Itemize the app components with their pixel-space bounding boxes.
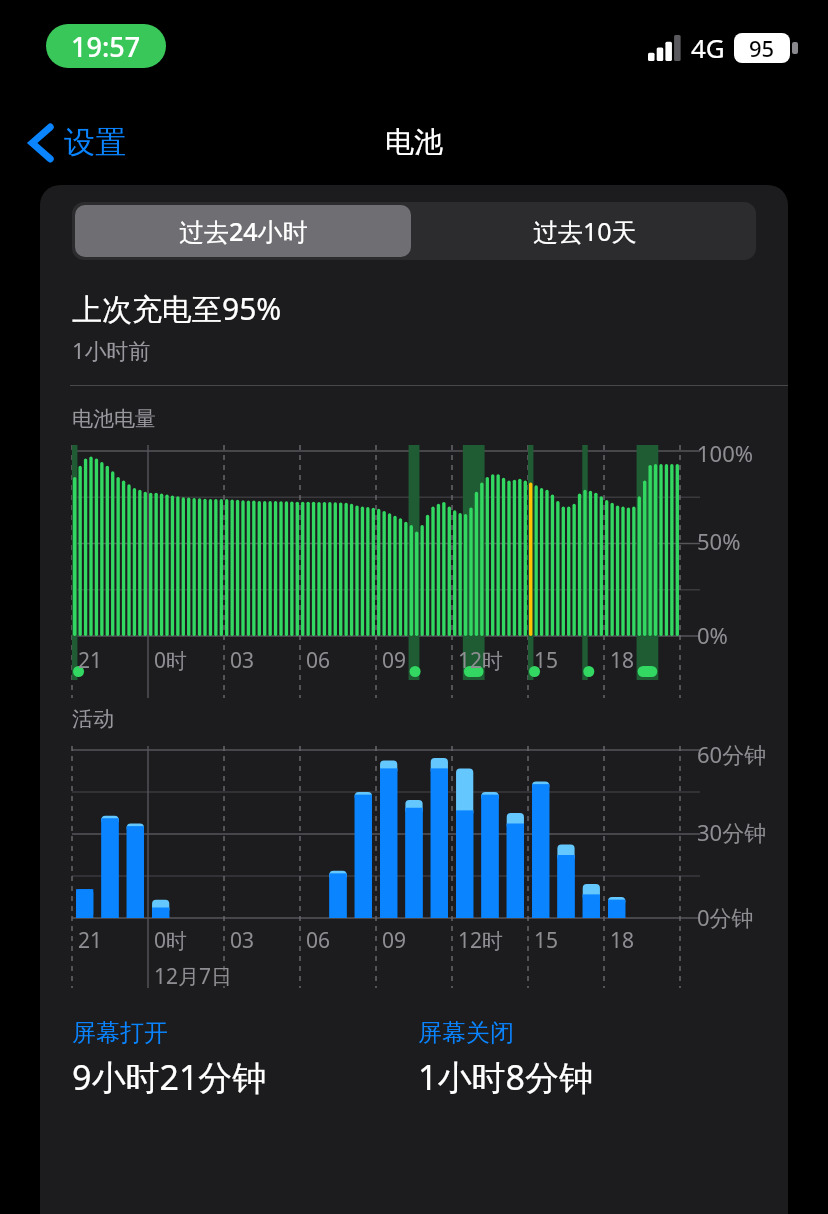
staticText: 03 — [230, 926, 255, 955]
staticText: 上次充电至95% — [72, 288, 282, 329]
staticText: 15 — [534, 646, 559, 675]
staticText: 0时 — [154, 926, 188, 955]
staticText: 活动 — [72, 706, 114, 732]
staticText: 18 — [610, 926, 635, 955]
staticText: 过去10天 — [533, 214, 637, 248]
staticText: 电池 — [385, 124, 443, 161]
staticText: 100% — [697, 438, 754, 468]
staticText: 12时 — [458, 926, 504, 955]
button[interactable]: 过去24小时 — [75, 205, 411, 257]
staticText: 屏幕关闭 — [418, 1018, 514, 1048]
button[interactable]: 屏幕打开 — [72, 1018, 418, 1100]
staticText: 09 — [382, 926, 407, 955]
staticText: 50% — [697, 526, 741, 556]
staticText: 09 — [382, 646, 407, 675]
staticText: 屏幕打开 — [72, 1018, 168, 1048]
staticText: 18 — [610, 646, 635, 675]
staticText: 30分钟 — [697, 817, 767, 847]
staticText: 19:57 — [71, 28, 141, 65]
staticText: 06 — [306, 926, 331, 955]
staticText: 电池电量 — [72, 406, 156, 432]
staticText: 15 — [534, 926, 559, 955]
staticText: 95 — [749, 33, 775, 63]
staticText: 4G — [691, 30, 725, 65]
staticText: 0分钟 — [697, 902, 754, 932]
staticText: 0% — [697, 620, 728, 650]
button[interactable]: 设置 — [22, 117, 134, 168]
staticText: 1小时前 — [72, 335, 151, 365]
staticText: 1小时8分钟 — [418, 1054, 593, 1100]
button[interactable]: 屏幕关闭 — [418, 1018, 593, 1100]
staticText: 12时 — [458, 646, 504, 675]
staticText: 06 — [306, 646, 331, 675]
staticText: 12月7日 — [154, 962, 233, 991]
staticText: 60分钟 — [697, 739, 767, 769]
staticText: 21 — [78, 646, 103, 675]
staticText: 设置 — [64, 123, 126, 162]
staticText: 过去24小时 — [179, 214, 308, 248]
staticText: 9小时21分钟 — [72, 1054, 267, 1100]
staticText: 0时 — [154, 646, 188, 675]
button[interactable]: 过去10天 — [414, 202, 756, 260]
staticText: 21 — [78, 926, 103, 955]
staticText: 03 — [230, 646, 255, 675]
